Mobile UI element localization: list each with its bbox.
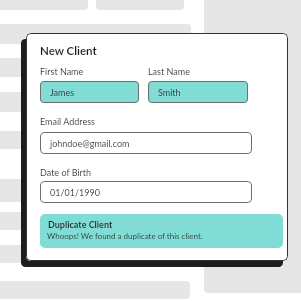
button[interactable]: Duplicate Client	[40, 214, 283, 248]
button[interactable]: johndoe@gmail.com	[40, 132, 252, 154]
staticText: johndoe@gmail.com	[50, 138, 130, 149]
staticText: Smith	[158, 87, 181, 98]
staticText: Duplicate Client	[48, 219, 113, 230]
staticText: New Client	[40, 44, 97, 58]
button[interactable]: Smith	[148, 81, 248, 103]
staticText: First Name	[40, 66, 84, 77]
staticText: 01/01/1990	[50, 187, 100, 198]
button[interactable]: 01/01/1990	[40, 181, 252, 203]
staticText: James	[50, 87, 75, 98]
staticText: Email Address	[40, 116, 95, 127]
staticText: Whoops! We found a duplicate of this cli…	[47, 231, 203, 241]
button[interactable]: James	[40, 81, 139, 103]
staticText: Date of Birth	[40, 167, 92, 178]
staticText: Last Name	[148, 66, 190, 77]
